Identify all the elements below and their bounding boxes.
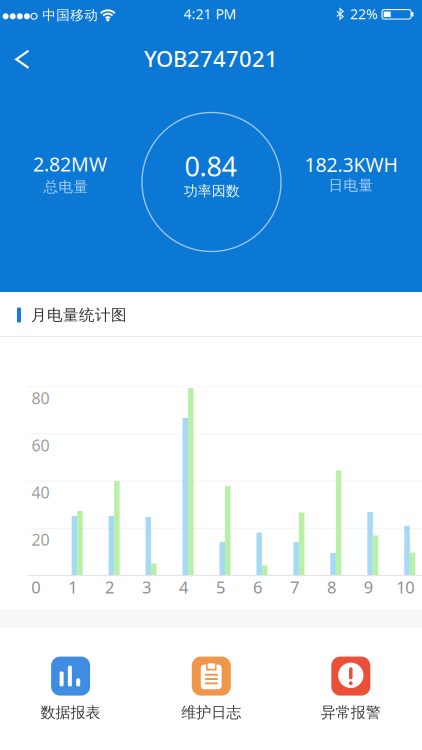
staticText: 功率因数	[184, 182, 240, 200]
staticText: 异常报警	[321, 703, 381, 722]
staticText: 维护日志	[181, 703, 241, 722]
staticText: 月电量统计图	[31, 305, 127, 325]
staticText: 80	[31, 387, 49, 409]
staticText: 数据报表	[41, 703, 101, 722]
staticText: 9	[364, 576, 373, 598]
staticText: 中国移动	[42, 7, 98, 24]
staticText: 总电量	[43, 178, 88, 196]
staticText: 4:21 PM	[183, 4, 236, 23]
staticText: 6	[253, 576, 262, 598]
staticText: 2	[105, 576, 114, 598]
staticText: 8	[327, 576, 336, 598]
staticText: 40	[31, 481, 49, 503]
staticText: 182.3KWH	[304, 151, 397, 178]
staticText: 0	[31, 576, 40, 598]
staticText: 0.84	[184, 148, 236, 184]
staticText: 2.82MW	[33, 151, 107, 177]
staticText: 10	[396, 576, 414, 598]
staticText: 3	[142, 576, 151, 598]
staticText: 4	[179, 576, 188, 598]
staticText: 1	[68, 576, 77, 598]
staticText: 60	[31, 434, 49, 456]
staticText: 20	[31, 529, 49, 550]
staticText: 5	[216, 576, 225, 598]
staticText: 日电量	[328, 176, 373, 195]
staticText: YOB2747021	[144, 43, 278, 73]
staticText: 7	[290, 576, 299, 598]
staticText: 22%	[350, 4, 378, 23]
